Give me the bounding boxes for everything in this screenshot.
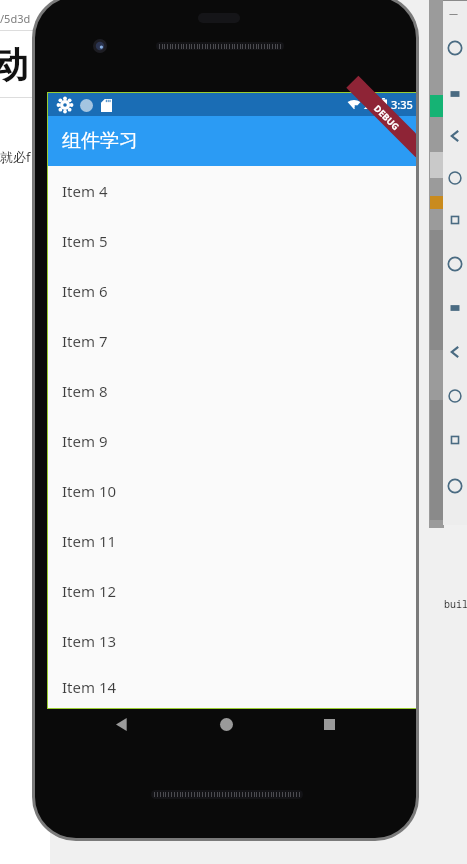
button[interactable]: Back <box>107 709 137 739</box>
button[interactable]: Item 14 <box>48 666 416 708</box>
button[interactable]: Item 7 <box>48 316 416 366</box>
button[interactable]: Item 11 <box>48 516 416 566</box>
staticText: 组件学习 <box>62 129 138 153</box>
staticText: 3:35 <box>391 97 413 112</box>
button[interactable]: Tool 3 <box>447 128 463 144</box>
staticText: 就必f <box>0 148 31 166</box>
button[interactable]: Tool 7 <box>447 300 463 316</box>
button[interactable]: Item 12 <box>48 566 416 616</box>
staticText: Item 11 <box>62 531 117 551</box>
staticText: Item 6 <box>62 281 108 301</box>
button[interactable]: Item 6 <box>48 266 416 316</box>
button[interactable]: Tool 10 <box>447 432 463 448</box>
staticText: — <box>449 7 459 19</box>
staticText: Item 14 <box>62 677 117 697</box>
staticText: /5d3d <box>0 11 31 26</box>
button[interactable]: Item 9 <box>48 416 416 466</box>
button[interactable]: Item 8 <box>48 366 416 416</box>
staticText: builde <box>444 597 467 611</box>
staticText: Item 4 <box>62 181 108 201</box>
button[interactable]: Item 10 <box>48 466 416 516</box>
button[interactable]: Tool 5 <box>447 212 463 228</box>
button[interactable]: Tool 4 <box>447 170 463 186</box>
button[interactable]: 组件学习 <box>48 116 416 166</box>
button[interactable]: Item 4 <box>48 166 416 216</box>
staticText: Item 5 <box>62 231 108 251</box>
button[interactable]: Item 13 <box>48 616 416 666</box>
staticText: Item 10 <box>62 481 117 501</box>
staticText: Item 13 <box>62 631 117 651</box>
button[interactable]: Tool 11 <box>447 478 463 494</box>
staticText: Item 9 <box>62 431 108 451</box>
staticText: Item 12 <box>62 581 117 601</box>
button[interactable]: Tool 2 <box>447 86 463 102</box>
button[interactable]: Recents <box>314 709 344 739</box>
button[interactable]: Item 5 <box>48 216 416 266</box>
button[interactable]: Tool 9 <box>447 388 463 404</box>
button[interactable]: Tool 8 <box>447 344 463 360</box>
staticText: DEBUG <box>372 102 402 132</box>
button[interactable]: Tool 1 <box>447 40 463 56</box>
staticText: Item 8 <box>62 381 108 401</box>
staticText: 动 <box>0 42 28 87</box>
button[interactable]: Tool 6 <box>447 256 463 272</box>
staticText: Item 7 <box>62 331 108 351</box>
button[interactable]: Home <box>211 709 241 739</box>
